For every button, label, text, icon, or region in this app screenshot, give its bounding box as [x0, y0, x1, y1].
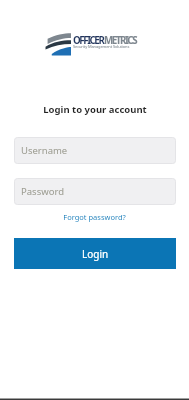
button[interactable]: Forgot password?	[0, 211, 189, 223]
staticText: OFFICER	[73, 34, 104, 47]
staticText: Forgot password?	[63, 212, 126, 222]
staticText: Login	[82, 247, 109, 261]
staticText: Password	[21, 185, 64, 198]
button[interactable]: Login	[14, 238, 176, 269]
staticText: METRICS	[104, 34, 137, 47]
staticText: Username	[21, 144, 68, 157]
staticText: Security Management Solutions	[73, 44, 130, 49]
button[interactable]: Username	[14, 137, 176, 164]
staticText: Login to your account	[43, 103, 147, 116]
button[interactable]: Password	[14, 178, 176, 205]
other: OfficerMetrics logo	[45, 31, 71, 54]
